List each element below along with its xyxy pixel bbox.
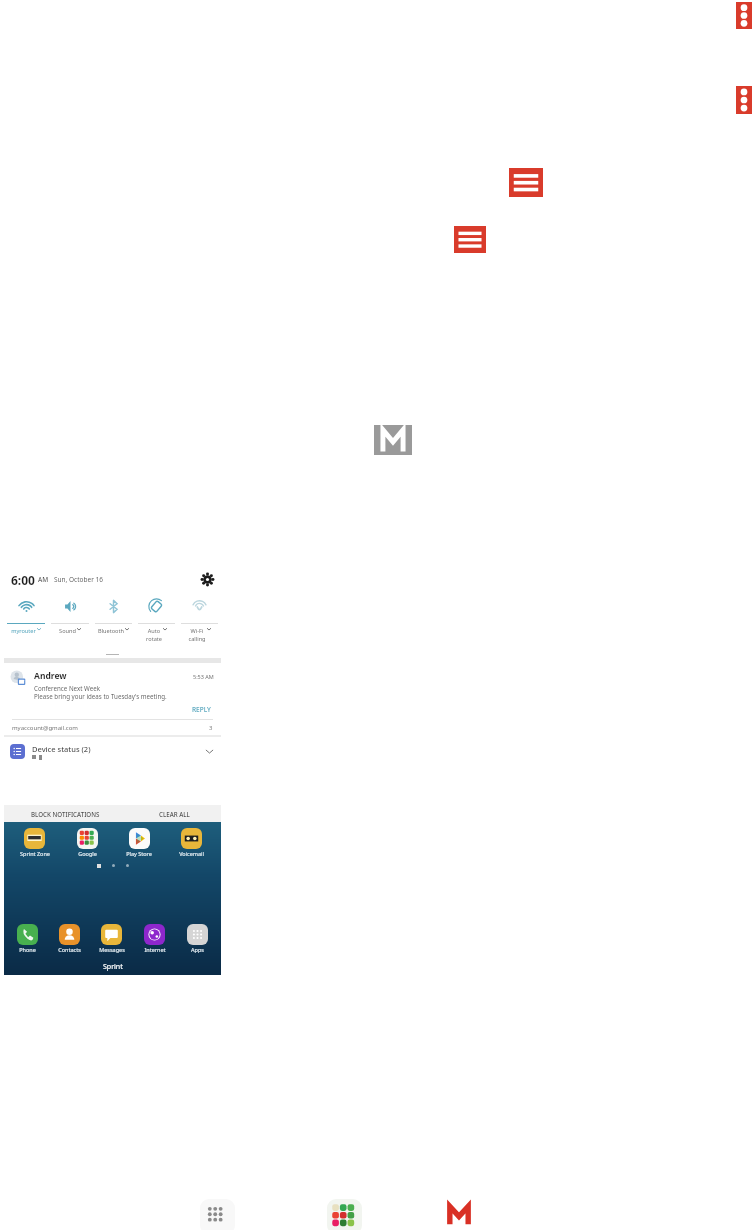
staticText: BLOCK NOTIFICATIONS (31, 810, 100, 818)
staticText: Sprint Zone (20, 850, 50, 857)
button[interactable]: Voicemail (165, 828, 217, 857)
button[interactable]: Play Store (113, 828, 165, 857)
staticText: 3 (209, 724, 213, 732)
staticText: AM (38, 575, 49, 584)
button[interactable]: Bluetooth (92, 623, 135, 650)
button[interactable]: Device status (2) (10, 737, 215, 766)
staticText: Auto rotate (146, 627, 162, 643)
button[interactable]: Settings (201, 573, 214, 586)
staticText: 6:00 (11, 572, 35, 588)
button[interactable]: Auto rotate (135, 623, 178, 650)
button[interactable]: More options (736, 86, 752, 114)
staticText: 5:53 AM (193, 673, 214, 680)
staticText: Sun, October 16 (54, 575, 103, 584)
staticText: Play Store (126, 850, 152, 857)
button[interactable]: BLOCK NOTIFICATIONS (4, 805, 127, 822)
button[interactable]: Sprint Zone (8, 828, 61, 857)
button[interactable]: Gmail (441, 1197, 477, 1230)
staticText: Please bring your ideas to Tuesday's mee… (34, 692, 167, 700)
staticText: Wi-Fi calling (188, 627, 206, 643)
button[interactable]: Menu (454, 226, 486, 253)
button[interactable]: Apps (176, 924, 219, 953)
staticText: Voicemail (179, 850, 204, 857)
button[interactable]: More options (736, 2, 752, 29)
button[interactable]: Google (61, 828, 113, 857)
button[interactable]: Google folder (327, 1199, 362, 1230)
button[interactable]: Sound (48, 590, 92, 623)
button[interactable]: myrouter (4, 623, 48, 650)
button[interactable]: Contacts (48, 924, 90, 953)
button[interactable]: Menu (509, 168, 543, 197)
button[interactable]: Apps (200, 1199, 235, 1230)
staticText: Phone (19, 946, 36, 953)
button[interactable]: Gmail (374, 425, 412, 455)
button[interactable]: Wi-Fi (4, 590, 48, 623)
staticText: Google (78, 850, 97, 857)
staticText: Sound (59, 627, 76, 635)
staticText: myaccount@gmail.com (12, 724, 78, 732)
staticText: Internet (144, 946, 166, 953)
staticText: Bluetooth (98, 627, 124, 635)
button[interactable]: REPLY (190, 703, 213, 716)
button[interactable]: Phone (6, 924, 48, 953)
staticText: Conference Next Week (34, 684, 101, 692)
staticText: Andrew (34, 670, 67, 682)
button[interactable]: Sound (48, 623, 92, 650)
staticText: myrouter (11, 627, 36, 635)
staticText: Sprint (103, 962, 123, 972)
button[interactable]: Bluetooth (92, 590, 135, 623)
staticText: Contacts (58, 946, 81, 953)
button[interactable]: Messages (90, 924, 133, 953)
staticText: Device status (2) (32, 744, 91, 754)
button[interactable]: Auto rotate (135, 590, 178, 623)
staticText: Apps (191, 946, 204, 953)
button[interactable]: Wi-Fi calling (178, 623, 221, 650)
staticText: REPLY (192, 705, 211, 714)
button[interactable]: Wi-Fi calling (178, 590, 221, 623)
staticText: CLEAR ALL (159, 810, 190, 818)
button[interactable]: Internet (133, 924, 176, 953)
button[interactable]: CLEAR ALL (127, 805, 221, 822)
staticText: Messages (99, 946, 125, 953)
